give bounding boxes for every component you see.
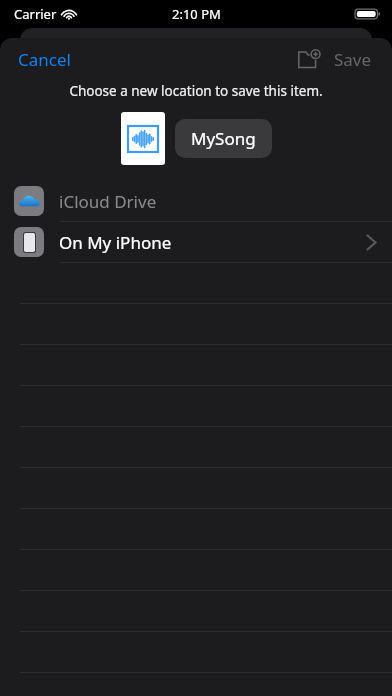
staticText: MySong xyxy=(191,127,256,150)
staticText: On My iPhone xyxy=(59,231,172,254)
button[interactable] xyxy=(121,112,165,165)
button[interactable]: MySong xyxy=(175,119,272,158)
button[interactable]: Save xyxy=(328,40,378,79)
staticText: 2:10 PM xyxy=(172,5,221,23)
staticText: iCloud Drive xyxy=(59,190,157,213)
button[interactable]: Cancel xyxy=(0,40,89,79)
button[interactable]: New Folder xyxy=(290,42,328,77)
button[interactable]: On My iPhone xyxy=(0,222,392,262)
staticText: Cancel xyxy=(18,48,71,71)
button[interactable]: iCloud Drive xyxy=(0,181,392,221)
staticText: Choose a new location to save this item. xyxy=(0,82,392,100)
staticText: Save xyxy=(334,48,372,71)
staticText: Carrier xyxy=(14,5,57,23)
